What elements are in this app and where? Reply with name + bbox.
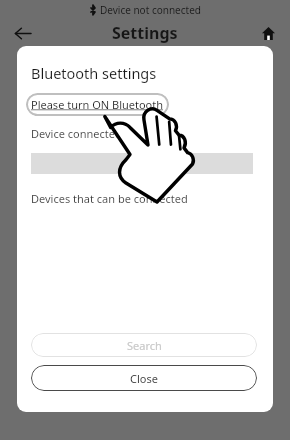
- staticText: Close: [130, 371, 158, 386]
- staticText: Settings: [112, 22, 178, 44]
- button[interactable]: [31, 153, 253, 174]
- button[interactable]: Home: [255, 20, 281, 46]
- staticText: Device not connected: [100, 3, 201, 17]
- staticText: Devices that can be connected: [31, 191, 188, 206]
- staticText: Search: [127, 338, 162, 353]
- staticText: Device connected: [31, 126, 122, 141]
- staticText: Please turn ON Bluetooth: [31, 97, 164, 112]
- staticText: Bluetooth settings: [31, 63, 157, 83]
- button[interactable]: Close: [31, 365, 257, 391]
- button[interactable]: Back: [8, 20, 38, 46]
- button[interactable]: Please turn ON Bluetooth: [31, 93, 164, 116]
- button[interactable]: Search: [31, 333, 257, 357]
